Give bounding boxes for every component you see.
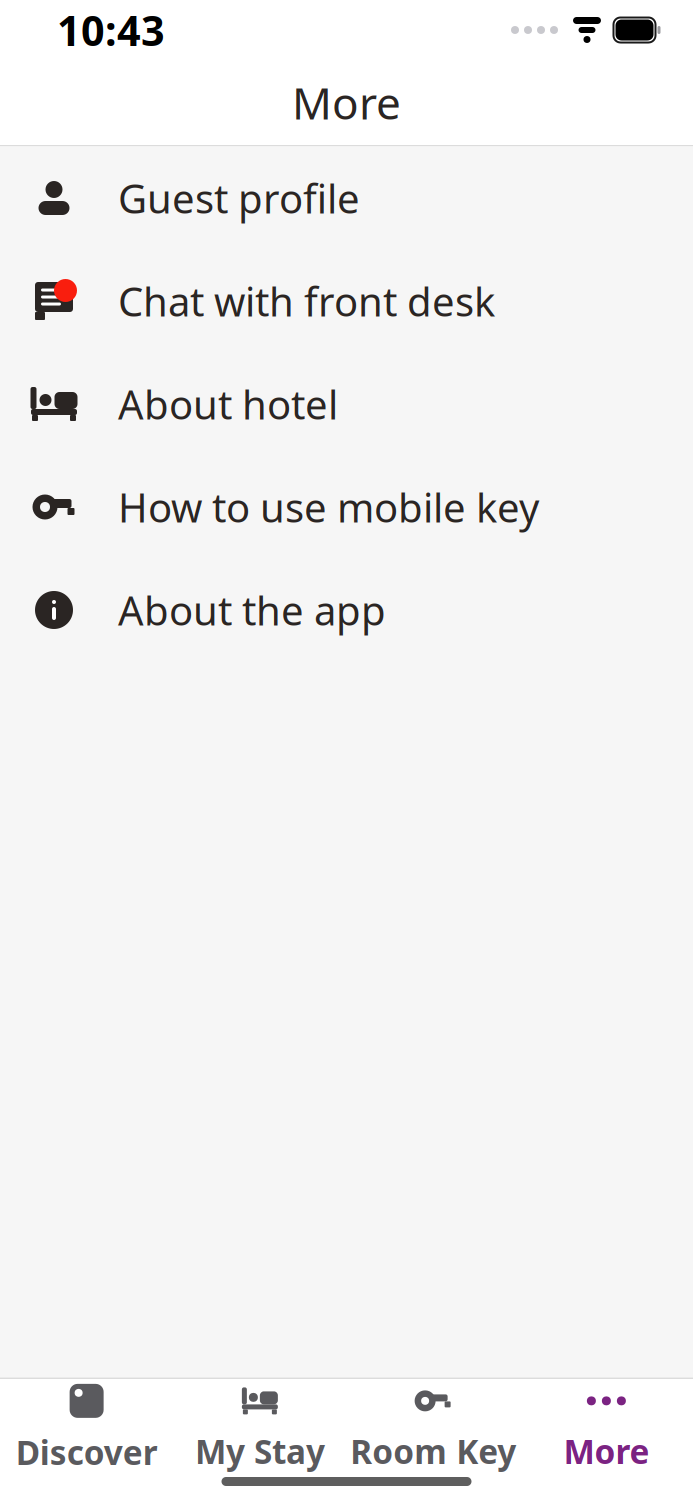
button[interactable]: Chat with front desk xyxy=(0,249,693,352)
staticText: More xyxy=(292,73,401,132)
staticText: More xyxy=(563,1429,649,1473)
button[interactable]: About hotel xyxy=(0,352,693,455)
staticText: Discover xyxy=(16,1430,158,1474)
button[interactable]: Discover xyxy=(0,1379,173,1477)
button[interactable]: Room Key xyxy=(346,1379,520,1477)
button[interactable]: About the app xyxy=(0,558,693,661)
staticText: About hotel xyxy=(118,377,338,430)
button[interactable]: More xyxy=(520,1379,693,1477)
button[interactable]: How to use mobile key xyxy=(0,455,693,558)
staticText: 10:43 xyxy=(57,3,165,57)
staticText: My Stay xyxy=(195,1429,325,1473)
staticText: Chat with front desk xyxy=(118,274,495,327)
staticText: Room Key xyxy=(350,1429,516,1473)
button[interactable]: Guest profile xyxy=(0,146,693,249)
staticText: How to use mobile key xyxy=(118,480,539,533)
button[interactable]: My Stay xyxy=(173,1379,346,1477)
staticText: Guest profile xyxy=(118,171,360,224)
staticText: About the app xyxy=(118,583,386,636)
